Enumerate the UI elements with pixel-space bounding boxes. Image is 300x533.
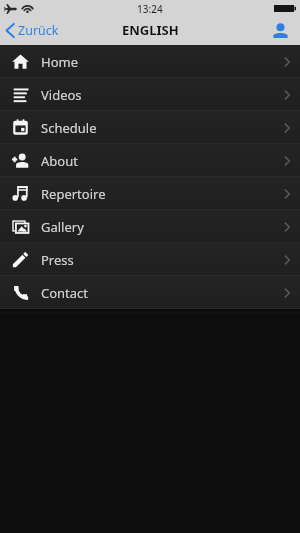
button[interactable]: Schedule (0, 111, 300, 144)
staticText: Schedule (41, 119, 273, 137)
staticText: Videos (41, 86, 273, 104)
button[interactable]: Repertoire (0, 177, 300, 210)
staticText: Contact (41, 284, 273, 302)
staticText: Repertoire (41, 185, 273, 203)
button[interactable]: Account (261, 16, 300, 45)
button[interactable]: Videos (0, 78, 300, 111)
button[interactable]: Gallery (0, 210, 300, 243)
button[interactable]: About (0, 144, 300, 177)
staticText: Zurück (18, 22, 59, 39)
staticText: Press (41, 251, 273, 269)
button[interactable]: Zurück (0, 16, 67, 45)
button[interactable]: Home (0, 45, 300, 78)
staticText: Gallery (41, 218, 273, 236)
staticText: Home (41, 53, 273, 71)
staticText: ENGLISH (122, 21, 179, 39)
button[interactable]: Contact (0, 276, 300, 309)
staticText: About (41, 152, 273, 170)
staticText: 13:24 (137, 2, 163, 16)
button[interactable]: Press (0, 243, 300, 276)
